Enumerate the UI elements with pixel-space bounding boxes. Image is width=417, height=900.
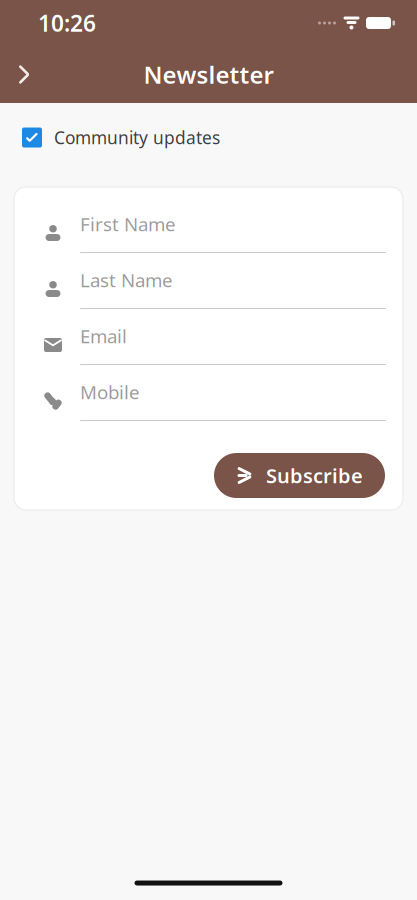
staticText: Last Name	[80, 268, 173, 292]
button[interactable]: Community updates	[22, 120, 220, 155]
button[interactable]: Subscribe	[214, 453, 385, 498]
staticText: 10:26	[38, 8, 96, 38]
staticText: Mobile	[80, 380, 140, 404]
staticText: Email	[80, 324, 127, 348]
staticText: Newsletter	[143, 59, 273, 90]
staticText: Subscribe	[266, 462, 363, 489]
staticText: Community updates	[54, 126, 220, 149]
button[interactable]: Back	[0, 50, 48, 98]
staticText: First Name	[80, 212, 176, 236]
